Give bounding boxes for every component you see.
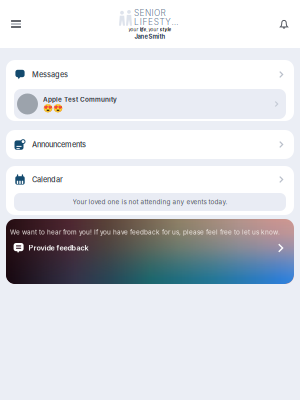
staticText: 😍😍	[43, 103, 63, 113]
staticText: Your loved one is not attending any even…	[72, 198, 227, 206]
staticText: Provide feedback	[29, 244, 89, 252]
staticText: We want to hear from you! If you have fe…	[10, 228, 280, 236]
button[interactable]: Provide feedback	[6, 236, 294, 260]
staticText: Apple Test Community	[43, 95, 117, 103]
staticText: Messages	[32, 70, 68, 79]
button[interactable]: Apple Test Community	[14, 89, 286, 119]
staticText: LIFESTYLE	[134, 17, 181, 27]
button[interactable]: Calendar	[6, 166, 294, 193]
button[interactable]: Messages	[6, 60, 294, 89]
staticText: Jane Smith	[134, 33, 165, 40]
staticText: SENIOR	[134, 8, 165, 18]
button[interactable]: Menu	[3, 11, 29, 37]
staticText: Announcements	[32, 140, 86, 149]
staticText: Calendar	[32, 175, 63, 184]
staticText: your life, your style	[128, 27, 171, 32]
button[interactable]: Announcements	[6, 130, 294, 159]
button[interactable]: Notifications	[271, 11, 297, 37]
